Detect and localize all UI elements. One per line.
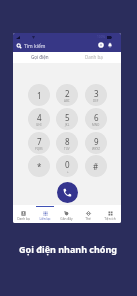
staticText: GHI — [36, 123, 42, 127]
staticText: Danh bạ — [85, 54, 103, 60]
button[interactable]: Notifications — [107, 42, 113, 48]
button[interactable]: 8 — [56, 132, 78, 154]
button[interactable]: Gần đây — [55, 205, 77, 223]
staticText: Gần đây — [60, 217, 73, 221]
button[interactable]: 9 — [85, 132, 107, 154]
staticText: * — [37, 161, 42, 172]
staticText: Danh bạ — [17, 217, 30, 221]
button[interactable]: Thẻ — [77, 205, 99, 223]
button[interactable]: Gọi điện — [13, 52, 67, 63]
button[interactable]: Liên lạc — [34, 205, 55, 223]
staticText: Liên lạc — [39, 217, 51, 221]
button[interactable]: 2 — [56, 84, 78, 106]
staticText: Tiện ích — [104, 217, 116, 221]
button[interactable]: Danh bạ — [67, 52, 121, 63]
button[interactable]: 6 — [85, 108, 107, 130]
staticText: JKL — [65, 123, 70, 127]
staticText: 100% — [97, 35, 106, 39]
button[interactable]: Assistant — [98, 42, 104, 48]
staticText: WXYZ — [92, 147, 100, 151]
staticText: Gọi điện nhanh chóng — [19, 243, 118, 255]
staticText: PQRS — [35, 147, 43, 151]
button[interactable]: 4 — [28, 108, 50, 130]
staticText: 4 — [37, 112, 42, 123]
staticText: Thẻ — [85, 217, 91, 221]
staticText: 9 — [94, 136, 99, 147]
button[interactable]: 5 — [56, 108, 78, 130]
staticText: 2 — [65, 88, 70, 99]
button[interactable]: Search — [16, 43, 22, 49]
button[interactable]: 0 — [56, 155, 78, 177]
staticText: ABC — [64, 99, 70, 103]
staticText: Tìm kiếm — [24, 43, 46, 50]
staticText: Gọi điện — [31, 54, 49, 60]
staticText: 1 — [37, 90, 42, 101]
staticText: TUV — [64, 147, 70, 151]
button[interactable]: Tiện ích — [99, 205, 121, 223]
staticText: 3 — [94, 88, 99, 99]
button[interactable]: Call — [57, 182, 78, 203]
staticText: MNO — [92, 123, 100, 127]
button[interactable]: 3 — [85, 84, 107, 106]
staticText: 5 — [65, 112, 70, 123]
staticText: DEF — [93, 99, 99, 103]
button[interactable]: # — [85, 155, 107, 177]
button[interactable]: * — [28, 155, 50, 177]
staticText: 0 — [65, 159, 70, 170]
button[interactable]: 7 — [28, 132, 50, 154]
staticText: + — [67, 170, 69, 174]
button[interactable]: Danh bạ — [13, 205, 34, 223]
staticText: 6 — [94, 112, 99, 123]
staticText: 7 — [37, 136, 42, 147]
button[interactable]: 1 — [28, 84, 50, 106]
staticText: # — [93, 161, 99, 172]
staticText: 8 — [65, 136, 70, 147]
